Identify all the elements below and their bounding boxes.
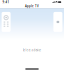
staticText: Apple TV xyxy=(25,4,39,8)
button[interactable]: Apple TV xyxy=(53,12,62,32)
staticText: 9:41 xyxy=(3,0,10,4)
button[interactable]: Siri Remote xyxy=(2,12,11,32)
staticText: Select a device xyxy=(22,48,41,52)
